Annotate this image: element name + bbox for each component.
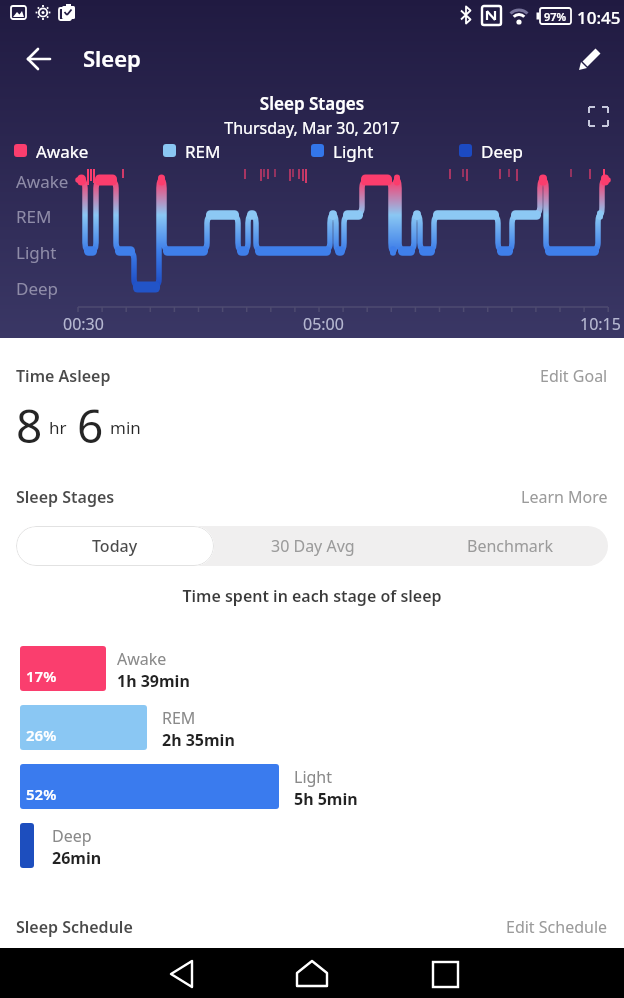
button[interactable] xyxy=(294,958,330,990)
staticText: 97% xyxy=(544,9,567,24)
staticText: 17% xyxy=(26,666,57,686)
staticText: 8 xyxy=(16,394,43,446)
staticText: 52% xyxy=(26,784,57,804)
staticText: Deep xyxy=(16,277,59,300)
button[interactable] xyxy=(585,103,611,129)
staticText: Benchmark xyxy=(467,535,553,557)
staticText: 30 Day Avg xyxy=(271,535,355,557)
staticText: Light xyxy=(16,241,57,264)
staticText: Sleep xyxy=(83,43,141,73)
button[interactable] xyxy=(428,958,464,990)
staticText: 10:15 xyxy=(580,313,621,335)
staticText: 00:30 xyxy=(63,313,104,335)
staticText: Time spent in each stage of sleep xyxy=(0,585,624,607)
button[interactable]: Benchmark xyxy=(411,526,608,566)
staticText: REM xyxy=(16,205,52,228)
staticText: Sleep Schedule xyxy=(16,916,133,938)
staticText: 6 xyxy=(77,394,104,446)
button[interactable]: 30 Day Avg xyxy=(214,526,411,566)
staticText: REM xyxy=(185,140,221,163)
staticText: Awake xyxy=(117,648,167,670)
staticText: Awake xyxy=(16,170,69,193)
button[interactable]: Today xyxy=(16,526,214,566)
button[interactable]: Learn More xyxy=(521,486,608,508)
staticText: Light xyxy=(294,766,333,788)
button[interactable]: Edit Schedule xyxy=(506,916,608,938)
staticText: 1h 39min xyxy=(117,670,190,692)
staticText: Sleep Stages xyxy=(0,92,624,115)
staticText: Light xyxy=(333,140,374,163)
staticText: Thursday, Mar 30, 2017 xyxy=(0,117,624,139)
staticText: min xyxy=(110,416,141,439)
staticText: Deep xyxy=(481,140,524,163)
button[interactable] xyxy=(16,42,60,76)
button[interactable] xyxy=(165,958,199,990)
staticText: 10:45 xyxy=(577,6,621,29)
staticText: REM xyxy=(162,707,196,729)
staticText: 2h 35min xyxy=(162,729,235,751)
staticText: Sleep Stages xyxy=(16,486,115,508)
staticText: Awake xyxy=(36,140,89,163)
staticText: hr xyxy=(49,416,67,439)
staticText: Today xyxy=(92,535,138,557)
staticText: 26min xyxy=(52,847,102,869)
staticText: 26% xyxy=(26,725,57,745)
button[interactable]: Edit Goal xyxy=(540,365,608,387)
staticText: 05:00 xyxy=(303,313,344,335)
staticText: Deep xyxy=(52,825,92,847)
button[interactable] xyxy=(572,41,608,77)
staticText: Time Asleep xyxy=(16,365,111,387)
staticText: 5h 5min xyxy=(294,788,358,810)
